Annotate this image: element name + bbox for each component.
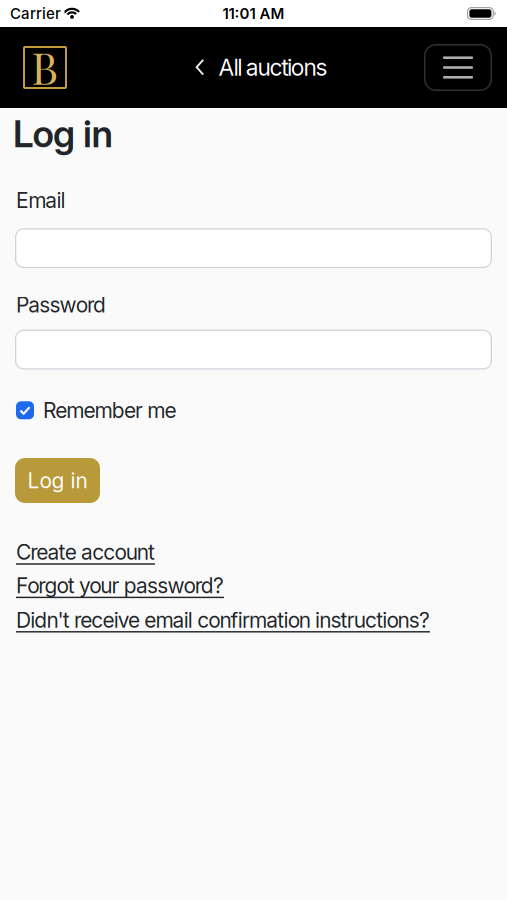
button[interactable]: All auctions bbox=[188, 54, 319, 81]
button[interactable]: Email bbox=[15, 228, 492, 268]
button[interactable]: Remember me bbox=[0, 398, 176, 423]
staticText: Log in bbox=[13, 111, 113, 156]
button[interactable]: Log in bbox=[15, 458, 100, 503]
button[interactable]: Menu bbox=[424, 44, 492, 91]
button[interactable]: Didn't receive email confirmation instru… bbox=[0, 607, 430, 633]
staticText: Carrier bbox=[10, 4, 61, 22]
staticText: Create account bbox=[16, 539, 155, 565]
staticText: Remember me bbox=[43, 398, 176, 423]
button[interactable]: Forgot your password? bbox=[0, 573, 224, 598]
staticText: All auctions bbox=[219, 54, 327, 81]
staticText: Email bbox=[16, 188, 66, 213]
button[interactable]: Password bbox=[15, 330, 492, 370]
staticText: Password bbox=[16, 292, 106, 318]
button[interactable]: Create account bbox=[0, 539, 155, 565]
staticText: 11:01 AM bbox=[222, 4, 284, 22]
staticText: Forgot your password? bbox=[16, 573, 224, 598]
staticText: B bbox=[31, 39, 58, 95]
staticText: Didn't receive email confirmation instru… bbox=[16, 607, 430, 633]
staticText: Log in bbox=[27, 468, 87, 493]
